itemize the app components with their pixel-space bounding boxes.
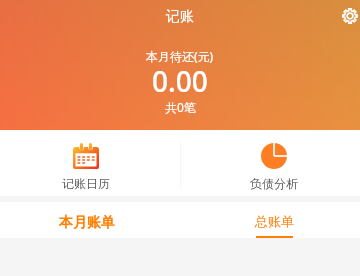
button[interactable]: 总账单 bbox=[234, 202, 314, 238]
button[interactable]: 记账日历 bbox=[46, 130, 126, 196]
staticText: 总账单 bbox=[255, 213, 294, 229]
staticText: 记账 bbox=[166, 8, 194, 26]
staticText: 本月待还(元) bbox=[146, 48, 214, 64]
staticText: 本月账单 bbox=[59, 214, 115, 232]
button[interactable]: Settings bbox=[336, 2, 360, 30]
button[interactable]: 本月账单 bbox=[47, 202, 127, 238]
staticText: 记账日历 bbox=[62, 176, 110, 191]
staticText: 0.00 bbox=[152, 62, 208, 100]
button[interactable]: 负债分析 bbox=[234, 130, 314, 196]
staticText: 共0笔 bbox=[165, 99, 196, 115]
staticText: 负债分析 bbox=[250, 176, 298, 191]
